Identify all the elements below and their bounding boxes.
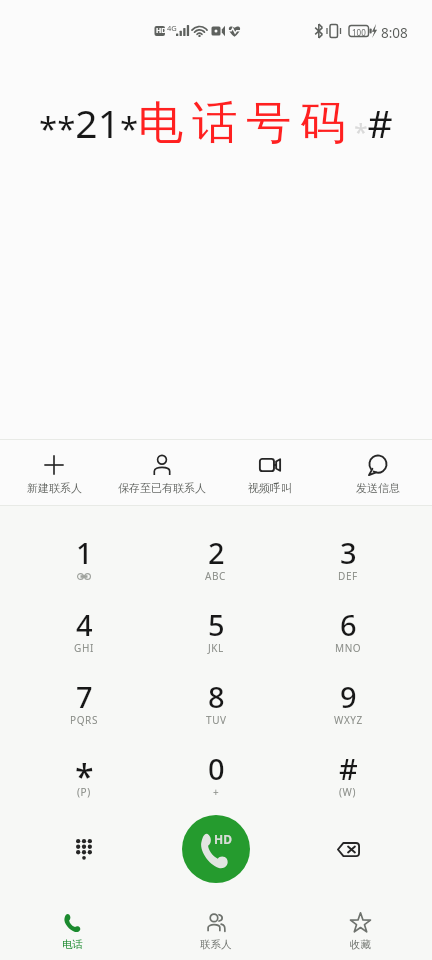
button[interactable]: 0 [150, 735, 282, 807]
staticText: 8:08 [381, 24, 408, 42]
staticText: GHI [74, 641, 94, 655]
staticText: 联系人 [200, 938, 232, 951]
button[interactable]: 发送信息 [324, 440, 432, 505]
staticText: 8 [208, 677, 225, 716]
staticText: DEF [338, 569, 358, 583]
staticText: (P) [77, 785, 91, 799]
button[interactable]: 6 [282, 591, 414, 663]
staticText: JKL [208, 641, 224, 655]
button[interactable]: 3 [282, 519, 414, 591]
staticText: 6 [340, 605, 357, 644]
button[interactable]: 9 [282, 663, 414, 735]
staticText: # [339, 749, 358, 788]
staticText: 3 [340, 533, 357, 572]
button[interactable]: 7 [18, 663, 150, 735]
button[interactable]: 8 [150, 663, 282, 735]
staticText: 发送信息 [356, 481, 400, 495]
staticText: 100 [352, 27, 366, 38]
staticText: * [75, 753, 94, 799]
staticText: MNO [335, 641, 362, 655]
button[interactable]: Dialpad [58, 823, 110, 875]
button[interactable]: Delete [322, 823, 374, 875]
staticText: 4 [76, 605, 93, 644]
button[interactable]: 收藏 [288, 898, 432, 960]
staticText: + [213, 785, 220, 799]
staticText: 电话 [62, 938, 83, 951]
staticText: PQRS [70, 713, 98, 727]
staticText: 9 [340, 677, 357, 716]
button[interactable]: 1 [18, 519, 150, 591]
staticText: 保存至已有联系人 [118, 481, 206, 495]
staticText: WXYZ [334, 713, 363, 727]
staticText: 5 [208, 605, 225, 644]
button[interactable]: 视频呼叫 [216, 440, 324, 505]
staticText: TUV [206, 713, 227, 727]
button[interactable]: 5 [150, 591, 282, 663]
button[interactable]: # [282, 735, 414, 807]
staticText: HD [214, 831, 232, 847]
staticText: 1 [76, 533, 93, 572]
button[interactable]: 4 [18, 591, 150, 663]
button[interactable]: 保存至已有联系人 [108, 440, 216, 505]
button[interactable]: 2 [150, 519, 282, 591]
staticText: 视频呼叫 [248, 481, 292, 495]
button[interactable]: Call [182, 815, 250, 883]
button[interactable]: 新建联系人 [0, 440, 108, 505]
staticText: HD [156, 26, 167, 36]
staticText: 4G [167, 23, 177, 33]
staticText: (W) [339, 785, 357, 799]
button[interactable]: 电话 [0, 898, 144, 960]
staticText: 0 [208, 749, 225, 788]
staticText: 新建联系人 [27, 481, 82, 495]
staticText: 2 [208, 533, 225, 572]
button[interactable]: * [18, 735, 150, 807]
staticText: 收藏 [350, 938, 371, 951]
staticText: 7 [76, 677, 93, 716]
button[interactable]: 联系人 [144, 898, 288, 960]
staticText: **21*电话号码*# [39, 95, 393, 152]
staticText: ABC [205, 569, 227, 583]
